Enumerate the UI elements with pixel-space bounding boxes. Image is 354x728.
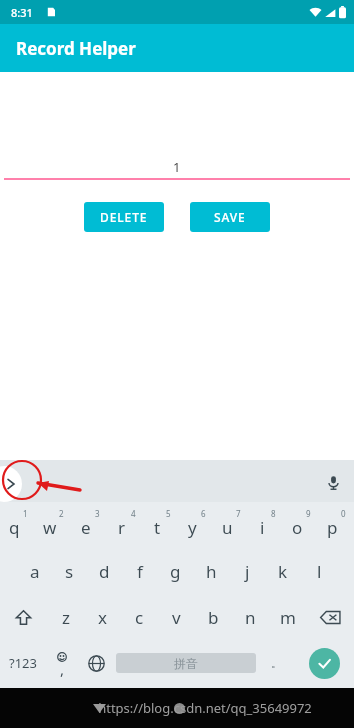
button[interactable]: p <box>319 502 354 548</box>
staticText: 8 <box>271 508 276 519</box>
staticText: l <box>317 560 322 583</box>
button[interactable]: e <box>72 502 108 548</box>
staticText: 3 <box>95 508 100 519</box>
staticText: k <box>278 560 288 583</box>
staticText: u <box>222 516 233 539</box>
button[interactable]: b <box>195 594 232 640</box>
staticText: n <box>245 606 256 629</box>
staticText: SAVE <box>214 209 246 225</box>
staticText: 5 <box>166 508 171 519</box>
button[interactable]: u <box>214 502 249 548</box>
button[interactable]: k <box>265 548 301 594</box>
button[interactable]: 拼音 <box>116 653 256 673</box>
staticText: g <box>170 560 181 583</box>
staticText: h <box>206 560 217 583</box>
button[interactable]: Shift <box>0 594 47 640</box>
button[interactable]: SAVE <box>190 202 270 232</box>
staticText: c <box>135 606 144 629</box>
button[interactable]: r <box>108 502 144 548</box>
staticText: 2 <box>59 508 64 519</box>
button[interactable]: w <box>36 502 72 548</box>
button[interactable]: Change language <box>78 640 114 686</box>
staticText: p <box>327 516 338 539</box>
button[interactable]: c <box>121 594 158 640</box>
button[interactable]: n <box>232 594 269 640</box>
staticText: e <box>81 516 91 539</box>
staticText: t <box>154 516 161 539</box>
button[interactable]: y <box>179 502 214 548</box>
staticText: j <box>245 560 250 583</box>
staticText: x <box>98 606 107 629</box>
button[interactable]: i <box>249 502 284 548</box>
staticText: o <box>292 516 303 539</box>
button[interactable]: x <box>84 594 121 640</box>
staticText: i <box>260 516 265 539</box>
button[interactable]: DELETE <box>84 202 164 232</box>
staticText: 8:31 <box>11 5 33 20</box>
staticText: ?123 <box>9 654 37 672</box>
button[interactable]: d <box>87 548 122 594</box>
staticText: y <box>188 516 197 539</box>
button[interactable]: j <box>229 548 265 594</box>
button[interactable]: g <box>157 548 193 594</box>
staticText: Record Helper <box>16 37 136 60</box>
button[interactable]: l <box>301 548 337 594</box>
button[interactable]: Voice input <box>320 469 346 495</box>
staticText: 4 <box>131 508 136 519</box>
button[interactable]: Home <box>164 693 194 723</box>
staticText: z <box>62 606 70 629</box>
button[interactable]: t <box>144 502 179 548</box>
staticText: d <box>99 560 110 583</box>
button[interactable]: a <box>17 548 52 594</box>
staticText: q <box>9 516 20 539</box>
button[interactable]: 。 <box>258 640 294 686</box>
button[interactable]: ?123 <box>0 640 46 686</box>
staticText: m <box>280 606 296 629</box>
staticText: 6 <box>201 508 206 519</box>
button[interactable]: m <box>269 594 306 640</box>
button[interactable]: h <box>193 548 229 594</box>
button[interactable]: v <box>158 594 195 640</box>
button[interactable]: Back <box>84 693 114 723</box>
staticText: 7 <box>236 508 241 519</box>
staticText: f <box>137 560 143 583</box>
staticText: https://blog.csdn.net/qq_35649972 <box>98 699 312 717</box>
staticText: 。 <box>271 656 282 670</box>
button[interactable]: Emoji and comma <box>46 640 78 686</box>
button[interactable]: Expand suggestions <box>0 466 22 502</box>
staticText: 拼音 <box>174 656 198 671</box>
staticText: 1 <box>23 508 28 519</box>
button[interactable]: Backspace <box>306 594 354 640</box>
staticText: v <box>172 606 181 629</box>
staticText: 9 <box>306 508 311 519</box>
staticText: w <box>43 516 57 539</box>
staticText: a <box>30 560 40 583</box>
staticText: 1 <box>173 158 181 176</box>
staticText: b <box>208 606 219 629</box>
button[interactable]: f <box>122 548 157 594</box>
button[interactable]: z <box>47 594 84 640</box>
staticText: s <box>65 560 74 583</box>
button[interactable]: s <box>52 548 87 594</box>
button[interactable]: Enter <box>294 640 354 686</box>
staticText: , <box>60 659 65 679</box>
staticText: r <box>118 516 126 539</box>
staticText: DELETE <box>100 209 148 225</box>
staticText: 0 <box>341 508 346 519</box>
button[interactable]: q <box>0 502 36 548</box>
button[interactable]: o <box>284 502 319 548</box>
